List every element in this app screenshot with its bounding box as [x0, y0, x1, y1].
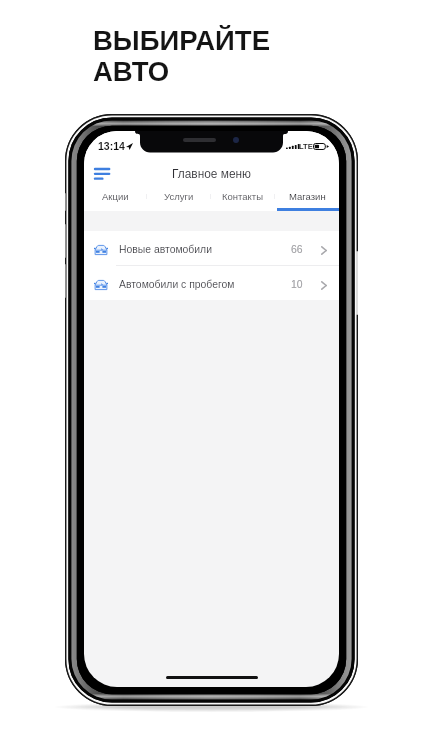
button[interactable]: Услуги	[147, 187, 211, 211]
staticText: 13:14	[98, 140, 125, 152]
button[interactable]: Автомобили с пробегом	[84, 266, 339, 300]
button[interactable]: Контакты	[211, 187, 275, 211]
staticText: Новые автомобили	[119, 244, 212, 256]
staticText: Автомобили с пробегом	[119, 279, 235, 291]
staticText: Контакты	[222, 191, 264, 202]
button[interactable]: Магазин	[275, 187, 339, 211]
button[interactable]: Новые автомобили	[84, 231, 339, 265]
staticText: Магазин	[289, 191, 326, 202]
staticText: 66	[291, 244, 303, 256]
button[interactable]: Open navigation menu	[89, 161, 113, 185]
staticText: Услуги	[164, 191, 194, 202]
staticText: 10	[291, 279, 303, 291]
staticText: ВЫБИРАЙТЕ	[93, 25, 271, 56]
staticText: Акции	[102, 191, 129, 202]
staticText: LTE	[299, 142, 313, 150]
staticText: АВТО	[93, 56, 170, 87]
button[interactable]: Акции	[84, 187, 147, 211]
staticText: Главное меню	[172, 167, 252, 180]
